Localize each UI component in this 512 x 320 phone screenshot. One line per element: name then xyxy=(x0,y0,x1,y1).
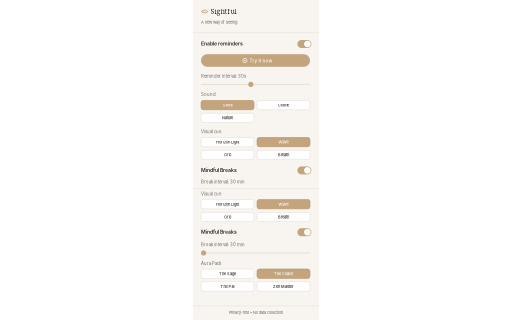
button[interactable]: The Coach xyxy=(257,269,310,278)
staticText: Breath xyxy=(278,152,289,157)
button[interactable]: Wave xyxy=(257,199,310,209)
staticText: Horizon Light xyxy=(216,140,239,144)
staticText: Orb xyxy=(224,215,231,219)
staticText: Zen Master xyxy=(273,284,294,289)
staticText: Break interval: 30 min xyxy=(201,242,245,247)
staticText: Nature xyxy=(222,115,233,120)
staticText: Reminder interval: 30s xyxy=(201,73,246,79)
staticText: Try it now xyxy=(250,58,273,64)
staticText: Silent xyxy=(222,103,232,107)
staticText: Aura Pack xyxy=(201,261,221,266)
button[interactable]: Nature xyxy=(201,113,254,123)
button[interactable]: Mindful Breaks xyxy=(201,228,310,236)
button[interactable]: Zen Master xyxy=(257,282,310,291)
staticText: The Sage xyxy=(219,271,236,276)
button[interactable]: Mindful Breaks xyxy=(201,166,310,174)
staticText: The Pal xyxy=(220,284,234,289)
staticText: Breath xyxy=(278,215,289,219)
button[interactable]: Wave xyxy=(257,137,310,147)
button[interactable]: Horizon Light xyxy=(201,199,254,209)
staticText: Horizon Light xyxy=(216,202,239,207)
staticText: The Coach xyxy=(274,271,293,276)
staticText: Sound xyxy=(201,92,216,97)
staticText: Enable reminders xyxy=(201,41,243,47)
button[interactable]: Orb xyxy=(201,150,254,160)
staticText: Chime xyxy=(278,103,289,107)
button[interactable]: Chime xyxy=(257,100,310,110)
button[interactable]: Enable reminders xyxy=(201,40,310,48)
staticText: Wave xyxy=(278,140,288,144)
staticText: Visual cue xyxy=(201,129,221,134)
button[interactable]: Horizon Light xyxy=(201,137,254,147)
staticText: Privacy-first • No data collection xyxy=(229,310,283,315)
button[interactable]: The Pal xyxy=(201,282,254,291)
button[interactable]: Silent xyxy=(201,100,254,110)
staticText: Mindful Breaks xyxy=(201,167,237,173)
button[interactable]: The Sage xyxy=(201,269,254,278)
button[interactable]: Try it now xyxy=(201,54,310,67)
staticText: Break interval: 30 min xyxy=(201,179,245,184)
staticText: A new way of seeing xyxy=(201,20,237,25)
staticText: Mindful Breaks xyxy=(201,229,237,235)
staticText: Orb xyxy=(224,152,231,157)
staticText: Wave xyxy=(278,202,288,207)
button[interactable]: Breath xyxy=(257,212,310,222)
staticText: Sightful xyxy=(211,7,237,16)
button[interactable]: Orb xyxy=(201,212,254,222)
button[interactable]: Breath xyxy=(257,150,310,160)
staticText: Visual cue xyxy=(201,191,221,197)
